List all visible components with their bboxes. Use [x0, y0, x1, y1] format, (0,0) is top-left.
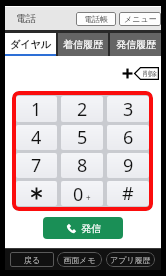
button[interactable]: 7: [16, 153, 57, 178]
button[interactable]: #: [107, 181, 149, 206]
staticText: 電話帳: [84, 14, 108, 24]
staticText: ダイヤル: [10, 38, 51, 51]
button[interactable]: メニュー: [119, 12, 161, 26]
staticText: 電話: [16, 12, 36, 25]
button[interactable]: [16, 181, 57, 206]
button[interactable]: ダイヤル: [5, 33, 56, 56]
staticText: 削除: [143, 69, 157, 78]
staticText: 4: [31, 125, 42, 150]
button[interactable]: 削除: [134, 67, 159, 80]
staticText: 0: [73, 182, 84, 206]
button[interactable]: 2: [61, 96, 103, 122]
button[interactable]: 画面メモ: [57, 252, 102, 267]
button[interactable]: 5: [61, 125, 103, 150]
staticText: 1: [31, 97, 42, 122]
staticText: 画面メモ: [63, 255, 96, 265]
staticText: 戻る: [24, 255, 41, 265]
staticText: 6: [123, 125, 134, 150]
button[interactable]: 1: [16, 96, 57, 122]
staticText: 2: [77, 97, 88, 122]
staticText: 8: [77, 153, 88, 178]
staticText: 発信: [81, 222, 101, 235]
button[interactable]: 発信: [43, 217, 123, 239]
staticText: 着信履歴: [63, 38, 103, 51]
staticText: #: [122, 181, 134, 206]
staticText: +: [86, 192, 91, 203]
staticText: メニュー: [124, 14, 157, 24]
button[interactable]: アプリ履歴: [106, 252, 155, 267]
staticText: 3: [123, 97, 134, 122]
staticText: アプリ履歴: [110, 255, 151, 265]
button[interactable]: 着信履歴: [58, 33, 108, 56]
button[interactable]: 発信履歴: [110, 33, 161, 56]
button[interactable]: 8: [61, 153, 103, 178]
staticText: 9: [123, 153, 134, 178]
staticText: 発信履歴: [116, 38, 156, 51]
button[interactable]: 9: [107, 153, 149, 178]
button[interactable]: 4: [16, 125, 57, 150]
button[interactable]: 0: [61, 181, 103, 206]
button[interactable]: 3: [107, 96, 149, 122]
button[interactable]: 6: [107, 125, 149, 150]
staticText: 5: [77, 125, 88, 150]
button[interactable]: 電話帳: [76, 12, 116, 26]
button[interactable]: 戻る: [10, 252, 54, 267]
staticText: 7: [31, 153, 42, 178]
